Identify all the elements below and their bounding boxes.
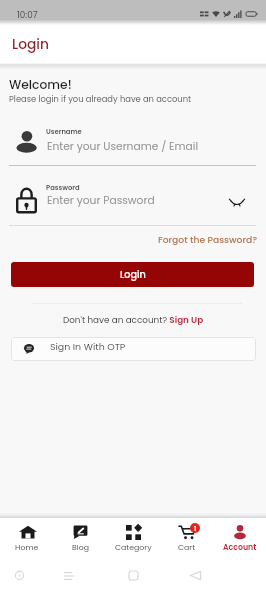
staticText: Enter your Username / Email [47,139,199,154]
staticText: Username [46,127,82,137]
staticText: Sign In With OTP [50,340,126,353]
button[interactable]: Back [190,571,201,580]
staticText: Cart [178,542,196,553]
staticText: 1 [194,524,197,533]
button[interactable]: Cart [160,518,213,558]
staticText: Welcome! [9,76,72,93]
staticText: Blog [72,542,89,553]
button[interactable]: Home [129,571,138,580]
staticText: 10:07 [17,9,38,21]
staticText: Please login if you already have an acco… [9,93,192,105]
button[interactable]: Show password [227,192,247,212]
staticText: Login [120,268,146,282]
staticText: Account [223,542,257,553]
button[interactable]: Recents [64,572,74,580]
button[interactable]: Forgot the Password? [155,230,261,249]
button[interactable]: Account [213,518,266,558]
button[interactable]: Category [107,518,160,558]
staticText: Enter your Password [47,193,155,208]
button[interactable]: Home [0,518,54,558]
staticText: Login [12,35,49,54]
staticText: Home [15,542,39,553]
button[interactable]: Login [11,262,254,287]
staticText: Password [46,183,80,193]
staticText: Don't have an account? Sign Up [63,314,204,326]
button[interactable]: Sign In With OTP [11,337,256,361]
button[interactable]: Assistant [15,571,24,580]
button[interactable]: Blog [54,518,107,558]
staticText: Forgot the Password? [158,233,258,246]
staticText: Category [115,542,152,553]
button[interactable]: Don't have an account? Sign Up [59,312,208,328]
